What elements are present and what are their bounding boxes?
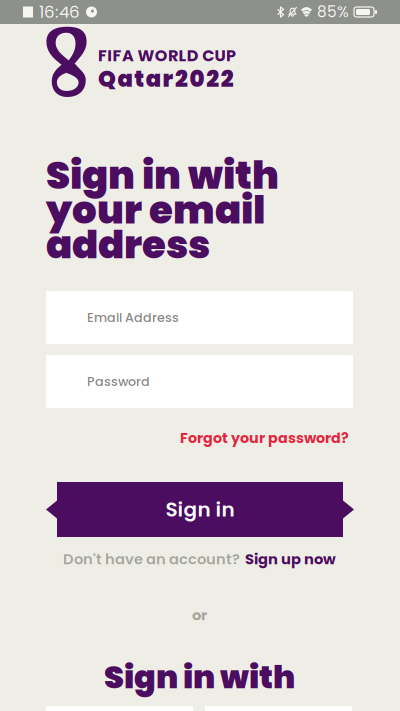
staticText: Sign in bbox=[165, 495, 234, 523]
staticText: Sign up now bbox=[245, 549, 336, 569]
staticText: FIFA WORLD CUP bbox=[98, 44, 236, 67]
staticText: 85% bbox=[317, 1, 349, 23]
button[interactable]: Sign in bbox=[46, 482, 354, 537]
staticText: Sign in with bbox=[46, 158, 279, 193]
staticText: or bbox=[192, 605, 207, 625]
button[interactable]: Forgot your password? bbox=[46, 427, 349, 449]
staticText: Password bbox=[87, 373, 150, 390]
staticText: 16:46 bbox=[39, 0, 80, 24]
staticText: Qatar2022 bbox=[98, 63, 234, 94]
button[interactable]: Email Address bbox=[46, 291, 353, 344]
staticText: Don't have an account? bbox=[63, 549, 240, 569]
staticText: Email Address bbox=[87, 309, 179, 326]
staticText: address bbox=[46, 227, 210, 262]
staticText: Forgot your password? bbox=[180, 428, 349, 448]
button[interactable]: Sign up now bbox=[245, 549, 336, 569]
staticText: your email bbox=[46, 193, 265, 227]
button[interactable]: Password bbox=[46, 355, 353, 408]
staticText: Sign in with bbox=[104, 655, 295, 699]
